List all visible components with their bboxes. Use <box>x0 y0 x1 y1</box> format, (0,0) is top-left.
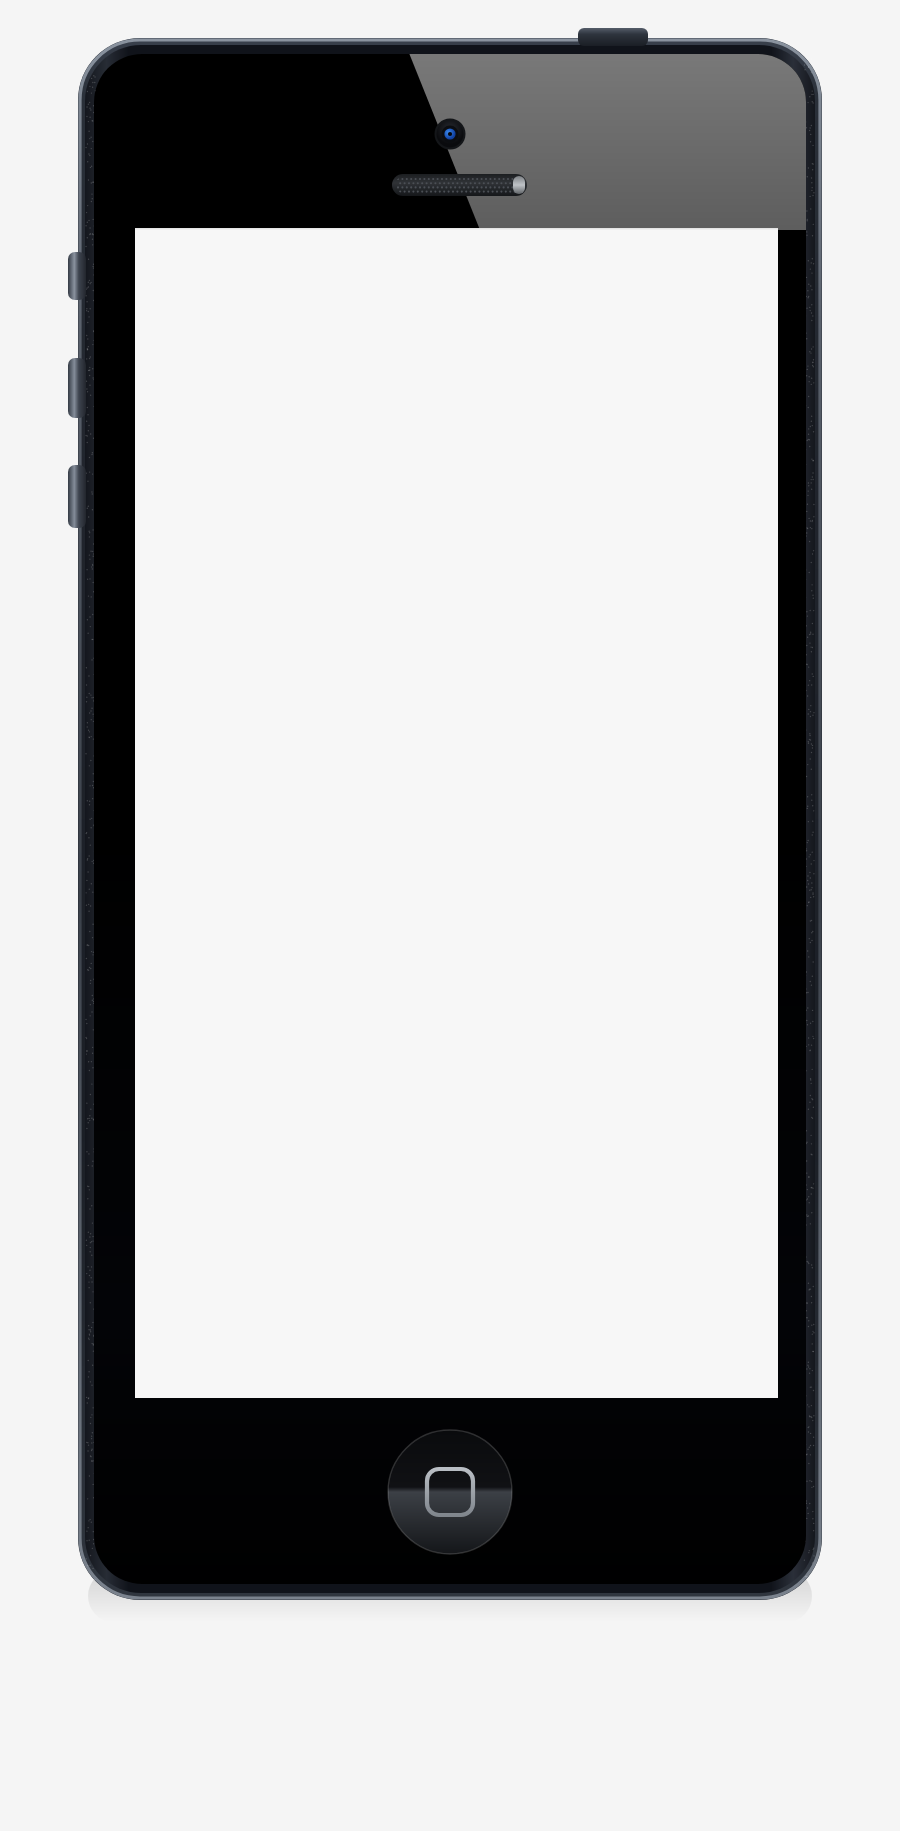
button[interactable]: iPhone device mockup with blank screen <box>0 0 900 1831</box>
